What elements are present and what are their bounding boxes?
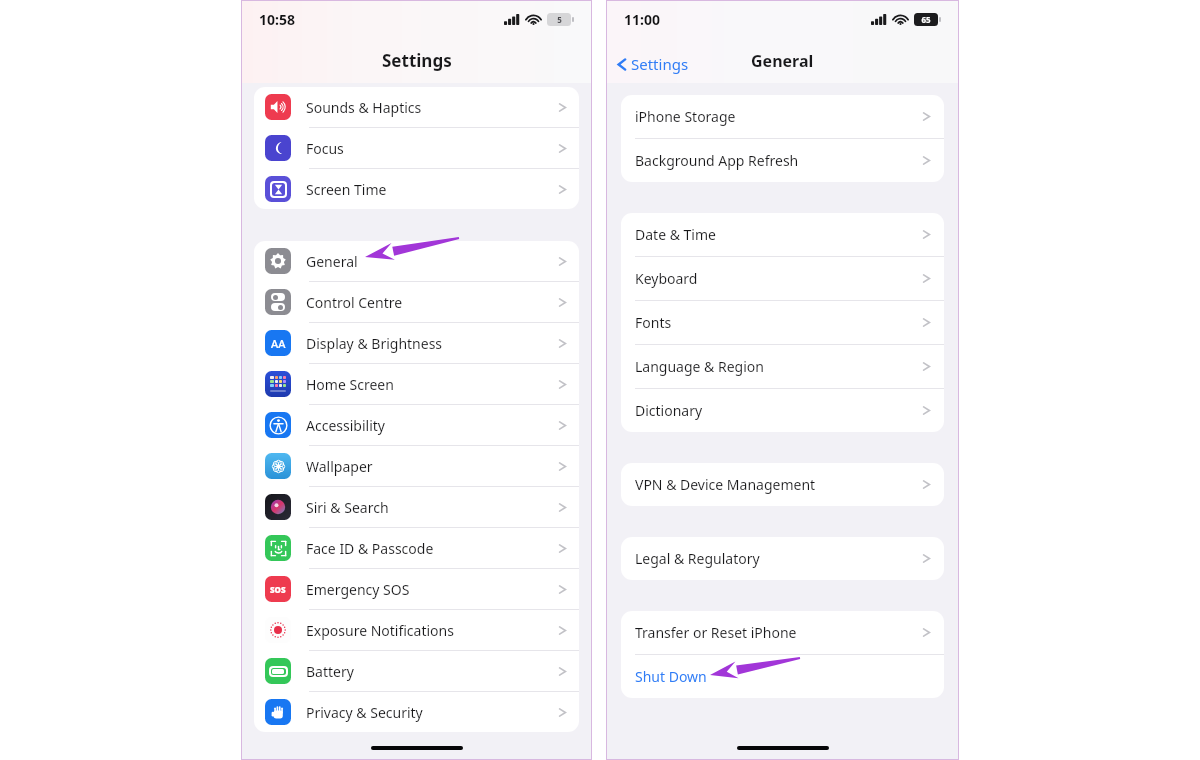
staticText: General xyxy=(751,50,814,72)
button[interactable]: VPN & Device Management xyxy=(621,463,944,506)
button[interactable]: Siri & Search xyxy=(254,487,579,527)
staticText: Legal & Regulatory xyxy=(635,549,760,568)
staticText: Battery xyxy=(306,662,354,681)
staticText: 10:58 xyxy=(259,10,295,29)
staticText: Screen Time xyxy=(306,180,387,199)
staticText: 11:00 xyxy=(624,10,660,29)
staticText: Date & Time xyxy=(635,225,716,244)
button[interactable]: Screen Time xyxy=(254,169,579,209)
button[interactable]: AA xyxy=(254,323,579,363)
staticText: Language & Region xyxy=(635,357,764,376)
button[interactable]: Face ID & Passcode xyxy=(254,528,579,568)
button[interactable]: Home Screen xyxy=(254,364,579,404)
button[interactable]: Transfer or Reset iPhone xyxy=(621,611,944,654)
button[interactable]: Control Centre xyxy=(254,282,579,322)
button[interactable]: Exposure Notifications xyxy=(254,610,579,650)
staticText: Face ID & Passcode xyxy=(306,539,434,558)
button[interactable]: Date & Time xyxy=(621,213,944,256)
button[interactable]: Fonts xyxy=(621,301,944,344)
button[interactable]: Language & Region xyxy=(621,345,944,388)
staticText: Transfer or Reset iPhone xyxy=(635,623,797,642)
staticText: Home Screen xyxy=(306,375,394,394)
button[interactable]: General xyxy=(254,241,579,281)
staticText: VPN & Device Management xyxy=(635,475,816,494)
button[interactable]: Wallpaper xyxy=(254,446,579,486)
button[interactable]: Keyboard xyxy=(621,257,944,300)
staticText: AA xyxy=(271,336,286,351)
button[interactable]: Sounds & Haptics xyxy=(254,87,579,127)
staticText: Keyboard xyxy=(635,269,698,288)
button[interactable]: Background App Refresh xyxy=(621,139,944,182)
staticText: 65 xyxy=(921,14,931,25)
staticText: Emergency SOS xyxy=(306,580,410,599)
button[interactable]: Settings xyxy=(614,51,692,77)
staticText: Siri & Search xyxy=(306,498,389,517)
staticText: Control Centre xyxy=(306,293,403,312)
button[interactable]: Battery xyxy=(254,651,579,691)
staticText: iPhone Storage xyxy=(635,107,736,126)
button[interactable]: Focus xyxy=(254,128,579,168)
staticText: SOS xyxy=(270,584,286,595)
staticText: Wallpaper xyxy=(306,457,373,476)
staticText: General xyxy=(306,252,358,271)
button[interactable]: SOS xyxy=(254,569,579,609)
button[interactable]: Dictionary xyxy=(621,389,944,432)
staticText: Background App Refresh xyxy=(635,151,799,170)
button[interactable]: iPhone Storage xyxy=(621,95,944,138)
staticText: Focus xyxy=(306,139,344,158)
staticText: Exposure Notifications xyxy=(306,621,454,640)
button[interactable]: Legal & Regulatory xyxy=(621,537,944,580)
staticText: Shut Down xyxy=(635,667,707,686)
staticText: Fonts xyxy=(635,313,672,332)
staticText: Accessibility xyxy=(306,416,385,435)
staticText: Privacy & Security xyxy=(306,703,423,722)
staticText: Sounds & Haptics xyxy=(306,98,422,117)
staticText: 5 xyxy=(557,14,562,25)
staticText: Settings xyxy=(382,49,452,72)
staticText: Settings xyxy=(631,54,689,74)
button[interactable]: Privacy & Security xyxy=(254,692,579,732)
button[interactable]: Accessibility xyxy=(254,405,579,445)
staticText: Display & Brightness xyxy=(306,334,443,353)
button[interactable]: Shut Down xyxy=(621,655,944,698)
staticText: Dictionary xyxy=(635,401,703,420)
